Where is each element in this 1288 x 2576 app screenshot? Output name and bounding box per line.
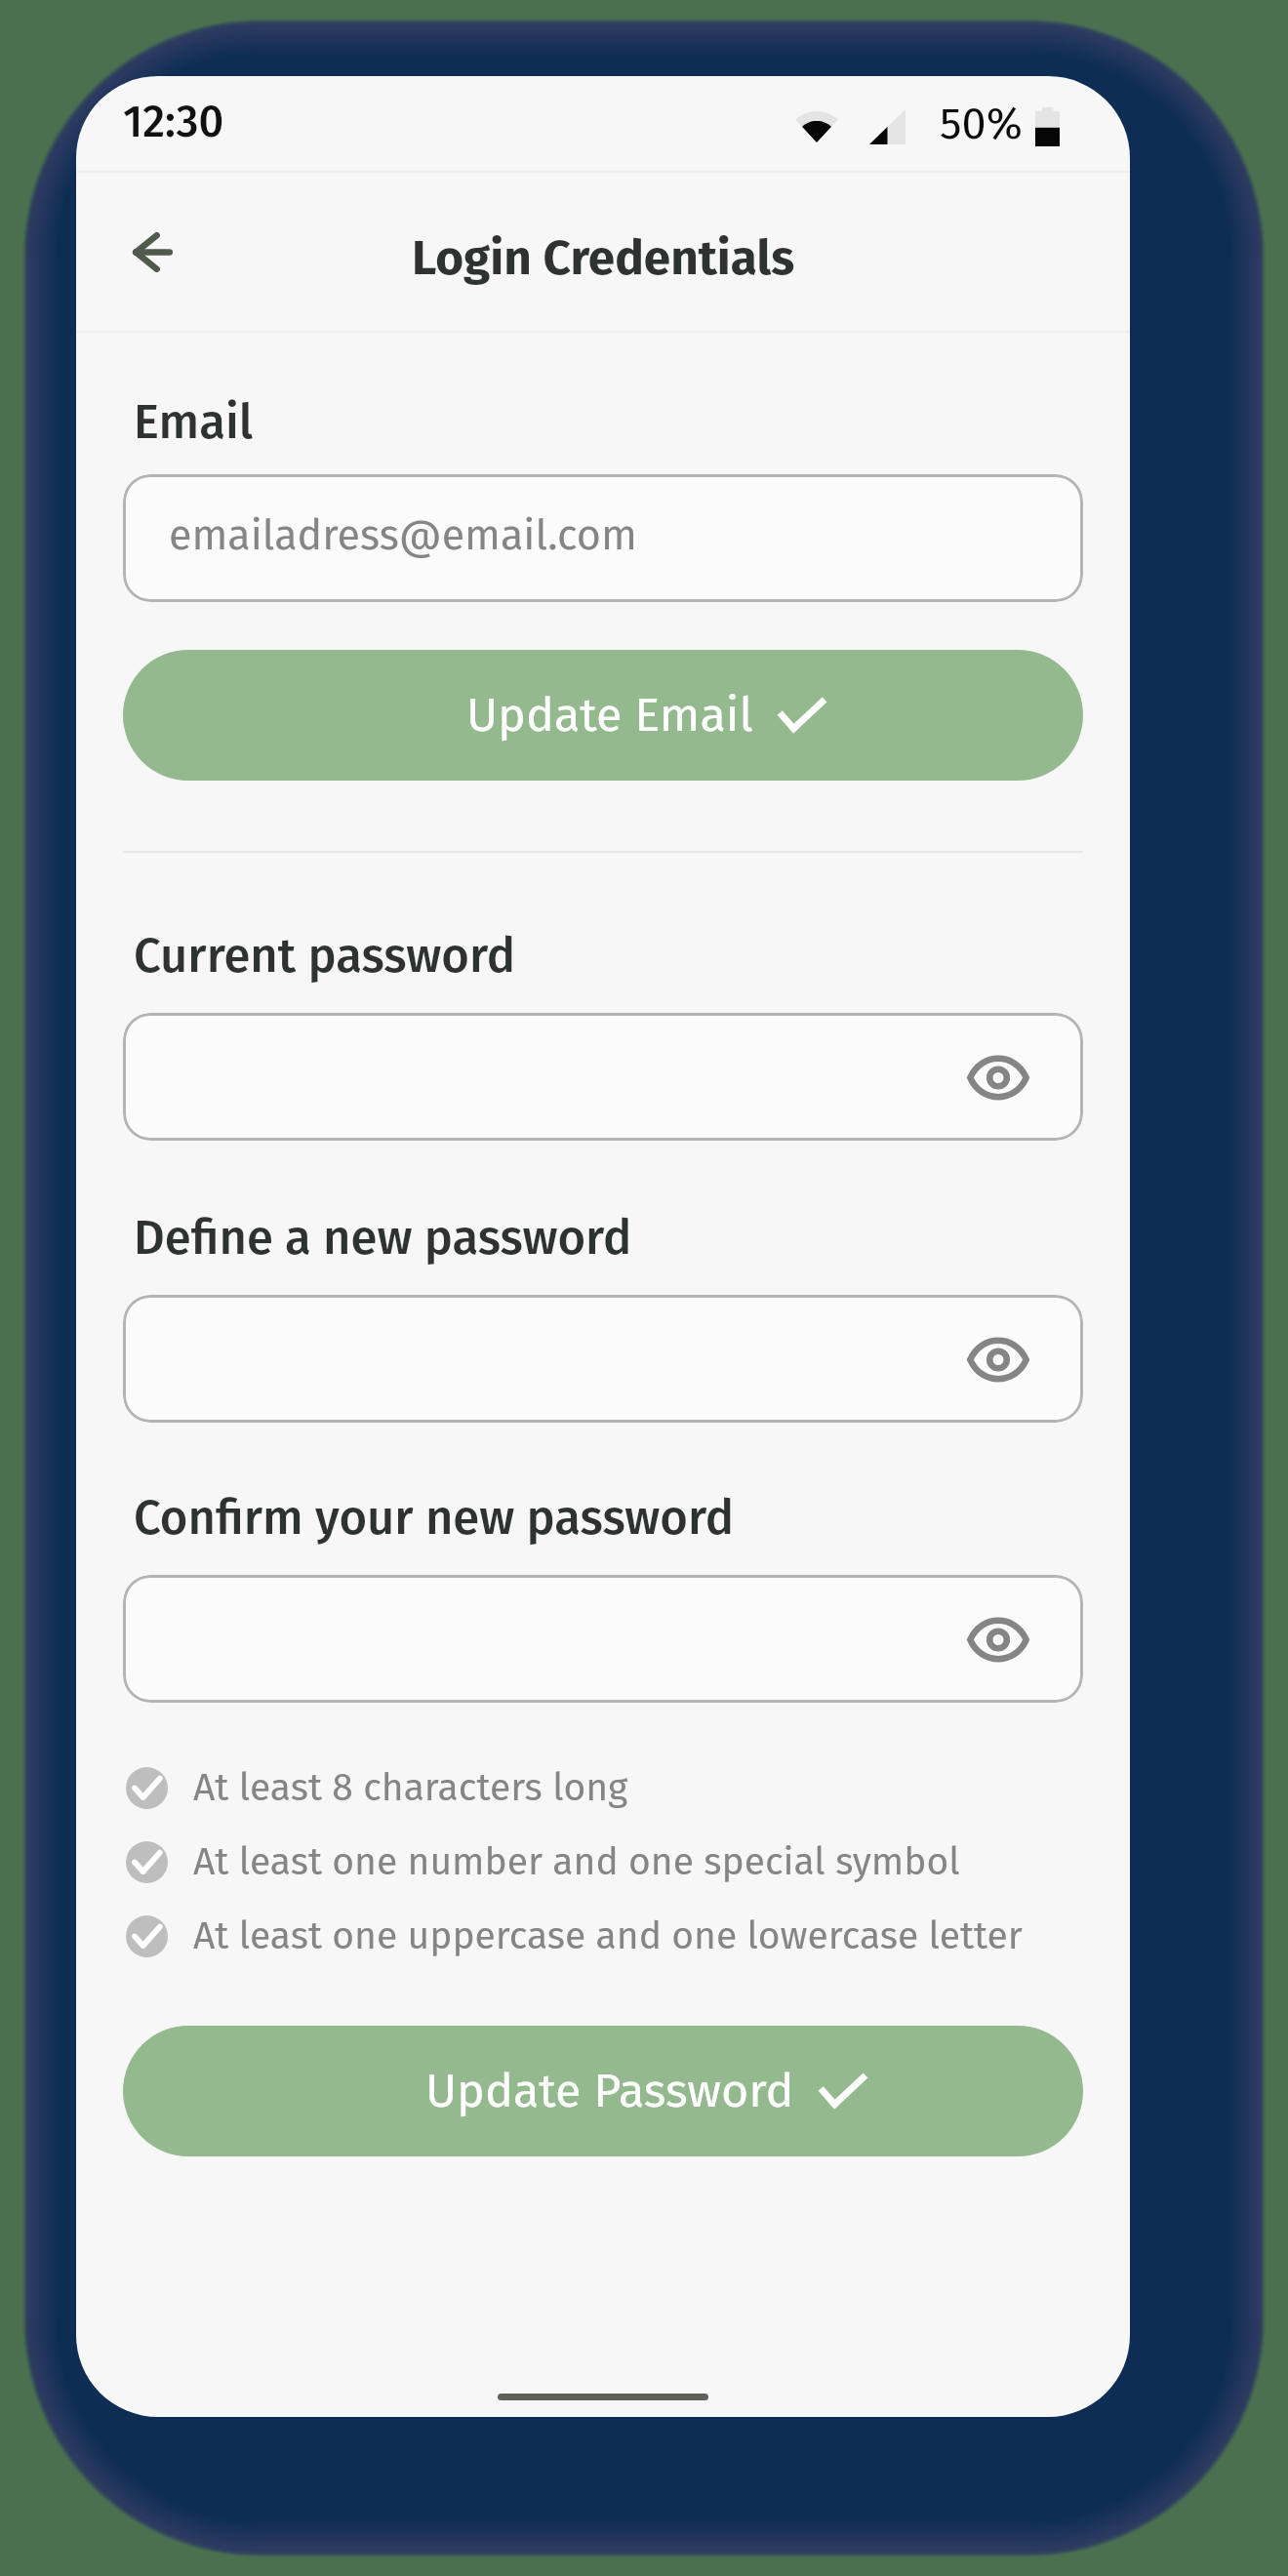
staticText: Define a new password (134, 1209, 632, 1267)
staticText: Update Password (425, 2063, 794, 2119)
button[interactable]: Show password (123, 1575, 1083, 1703)
staticText: Update Email (466, 687, 753, 744)
button[interactable]: Update Email (123, 650, 1083, 781)
staticText: At least one number and one special symb… (193, 1839, 960, 1885)
staticText: Login Credentials (412, 229, 795, 287)
staticText: emailadress@email.com (169, 510, 637, 561)
button[interactable]: Show password (964, 1325, 1032, 1393)
staticText: Confirm your new password (134, 1489, 735, 1547)
staticText: 50% (940, 98, 1023, 150)
button[interactable]: Show password (123, 1295, 1083, 1423)
staticText: 12:30 (123, 96, 224, 148)
button[interactable]: Back (107, 207, 197, 297)
staticText: Current password (134, 927, 516, 985)
button[interactable]: Update Password (123, 2026, 1083, 2156)
button[interactable]: Show password (964, 1605, 1032, 1673)
staticText: At least one uppercase and one lowercase… (193, 1913, 1023, 1959)
button[interactable]: Show password (964, 1043, 1032, 1111)
button[interactable]: Show password (123, 1013, 1083, 1141)
staticText: Email (134, 393, 254, 451)
button[interactable]: emailadress@email.com (123, 474, 1083, 602)
staticText: At least 8 characters long (193, 1765, 628, 1811)
